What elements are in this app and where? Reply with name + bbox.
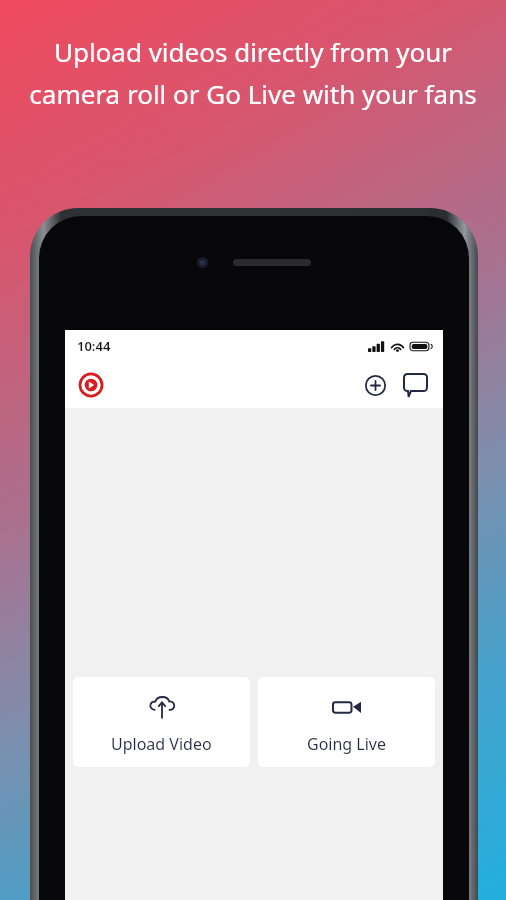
button[interactable]: Home [76,370,106,400]
staticText: 10:44 [77,337,111,355]
staticText: Upload videos directly from your camera … [26,34,480,112]
button[interactable]: Going Live [258,677,435,767]
button[interactable]: Add [358,368,392,402]
staticText: Upload Video [111,733,212,755]
button[interactable]: Messages [398,368,432,402]
button[interactable]: Upload Video [73,677,250,767]
staticText: Going Live [307,733,387,755]
